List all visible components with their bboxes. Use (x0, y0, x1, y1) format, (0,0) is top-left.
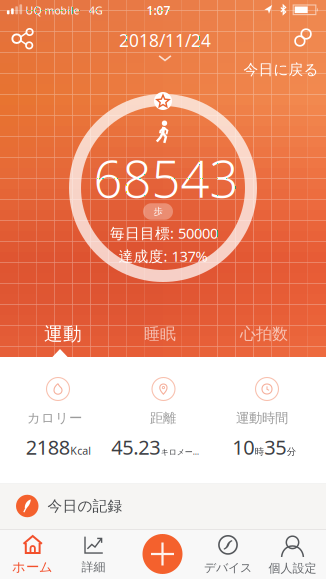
button[interactable]: ホーム (1, 531, 63, 579)
staticText: デバイス (204, 560, 252, 575)
button[interactable]: 今日の記録 (0, 483, 326, 528)
button[interactable]: 今日に戻る (243, 60, 318, 78)
button[interactable]: 個人設定 (261, 531, 323, 579)
staticText: 詳細 (81, 560, 105, 574)
staticText: 運動時間 (236, 410, 288, 426)
staticText: 2188 (26, 434, 70, 460)
button[interactable]: Choose date (119, 29, 211, 61)
staticText: UQ mobile (25, 3, 79, 17)
staticText: 今日に戻る (243, 60, 318, 78)
staticText: 4G (89, 3, 103, 17)
button[interactable]: Add record (142, 534, 182, 574)
staticText: 距離 (150, 410, 176, 426)
staticText: Kcal (70, 443, 91, 458)
staticText: 睡眠 (144, 324, 176, 344)
staticText: 今日の記録 (47, 497, 122, 515)
staticText: 毎日目標: 50000 (110, 223, 218, 243)
staticText: 個人設定 (268, 561, 316, 576)
staticText: キロメー… (161, 446, 199, 457)
staticText: 10 (232, 434, 254, 460)
staticText: 達成度: 137% (118, 246, 207, 266)
staticText: 分 (287, 446, 296, 457)
staticText: カロリー (27, 410, 82, 426)
staticText: 時 (255, 446, 264, 457)
staticText: 1:07 (146, 2, 170, 18)
staticText: 運動 (44, 322, 82, 345)
staticText: 2018/11/24 (119, 29, 211, 52)
staticText: 68543 (93, 144, 238, 212)
button[interactable]: 心拍数 (216, 319, 312, 349)
staticText: 歩 (153, 206, 162, 217)
staticText: 35 (264, 434, 286, 460)
staticText: 心拍数 (240, 324, 288, 344)
button[interactable]: 詳細 (62, 531, 124, 579)
button[interactable]: 運動 (15, 319, 111, 349)
staticText: ホーム (12, 559, 53, 575)
button[interactable]: Link device (294, 29, 311, 46)
staticText: 45.23 (111, 434, 160, 460)
button[interactable]: Share (11, 28, 33, 49)
button[interactable]: 睡眠 (112, 319, 208, 349)
button[interactable]: デバイス (197, 531, 259, 579)
